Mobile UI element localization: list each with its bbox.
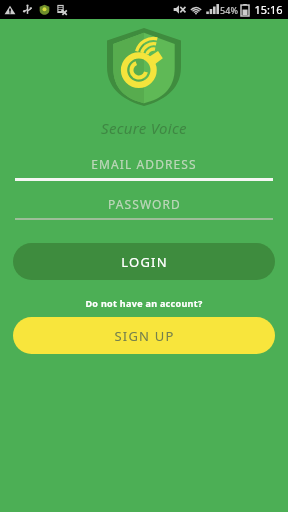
button[interactable]: LOGIN: [13, 243, 275, 280]
button[interactable]: Password field: [0, 194, 288, 220]
staticText: LOGIN: [121, 253, 168, 271]
button[interactable]: Email address field: [0, 154, 288, 181]
staticText: 15:16: [254, 2, 283, 17]
staticText: 54%: [220, 4, 238, 16]
staticText: Secure Voice: [101, 118, 187, 138]
button[interactable]: SIGN UP: [13, 317, 275, 354]
staticText: PASSWORD: [108, 196, 181, 212]
staticText: Do not have an account?: [85, 297, 203, 309]
staticText: SIGN UP: [114, 327, 175, 345]
staticText: EMAIL ADDRESS: [91, 156, 197, 172]
